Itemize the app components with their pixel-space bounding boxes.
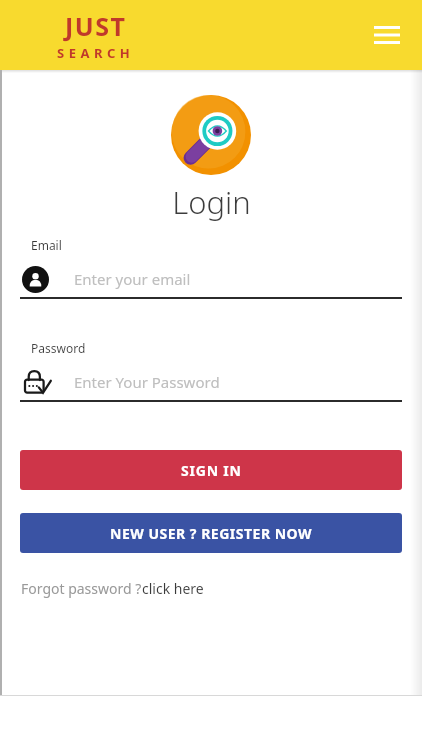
button[interactable]: SIGN IN [20,450,402,490]
staticText: Password [31,340,86,356]
button[interactable]: Forgot password ? [21,579,204,598]
button[interactable]: Enter Your Password [20,364,402,400]
staticText: JUST [65,9,127,43]
button[interactable]: Menu [367,15,407,55]
staticText: Enter Your Password [74,372,220,392]
staticText: Enter your email [74,269,191,289]
staticText: SIGN IN [181,461,242,480]
button[interactable]: NEW USER ? REGISTER NOW [20,513,402,553]
staticText: NEW USER ? REGISTER NOW [110,524,313,543]
staticText: Email [31,237,62,253]
button[interactable]: JUST [57,9,135,62]
staticText: Login [172,181,251,223]
staticText: SEARCH [57,44,135,62]
button[interactable]: Enter your email [20,261,402,297]
staticText: click here [142,579,204,598]
staticText: Forgot password ? [21,579,142,598]
